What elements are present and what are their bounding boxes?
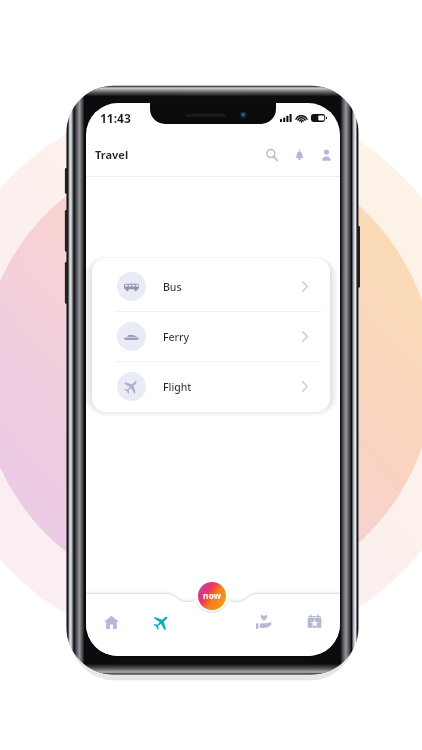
button[interactable]: Home (86, 612, 136, 632)
button[interactable]: Flights (136, 612, 187, 632)
staticText: Flight (163, 380, 192, 394)
staticText: Travel (95, 147, 129, 162)
button[interactable]: Search (258, 140, 286, 170)
staticText: 11:43 (100, 110, 131, 126)
button[interactable]: Events (289, 612, 340, 632)
button[interactable]: Flight (92, 362, 330, 411)
button[interactable]: Notifications (286, 140, 313, 170)
staticText: Bus (163, 280, 182, 294)
button[interactable]: Bus (92, 262, 330, 311)
button[interactable]: Profile (313, 140, 340, 170)
button[interactable]: Ferry (92, 312, 330, 361)
staticText: now (203, 590, 221, 602)
staticText: Ferry (163, 330, 189, 344)
button[interactable]: Donate (238, 612, 289, 632)
button[interactable]: now (198, 582, 226, 610)
